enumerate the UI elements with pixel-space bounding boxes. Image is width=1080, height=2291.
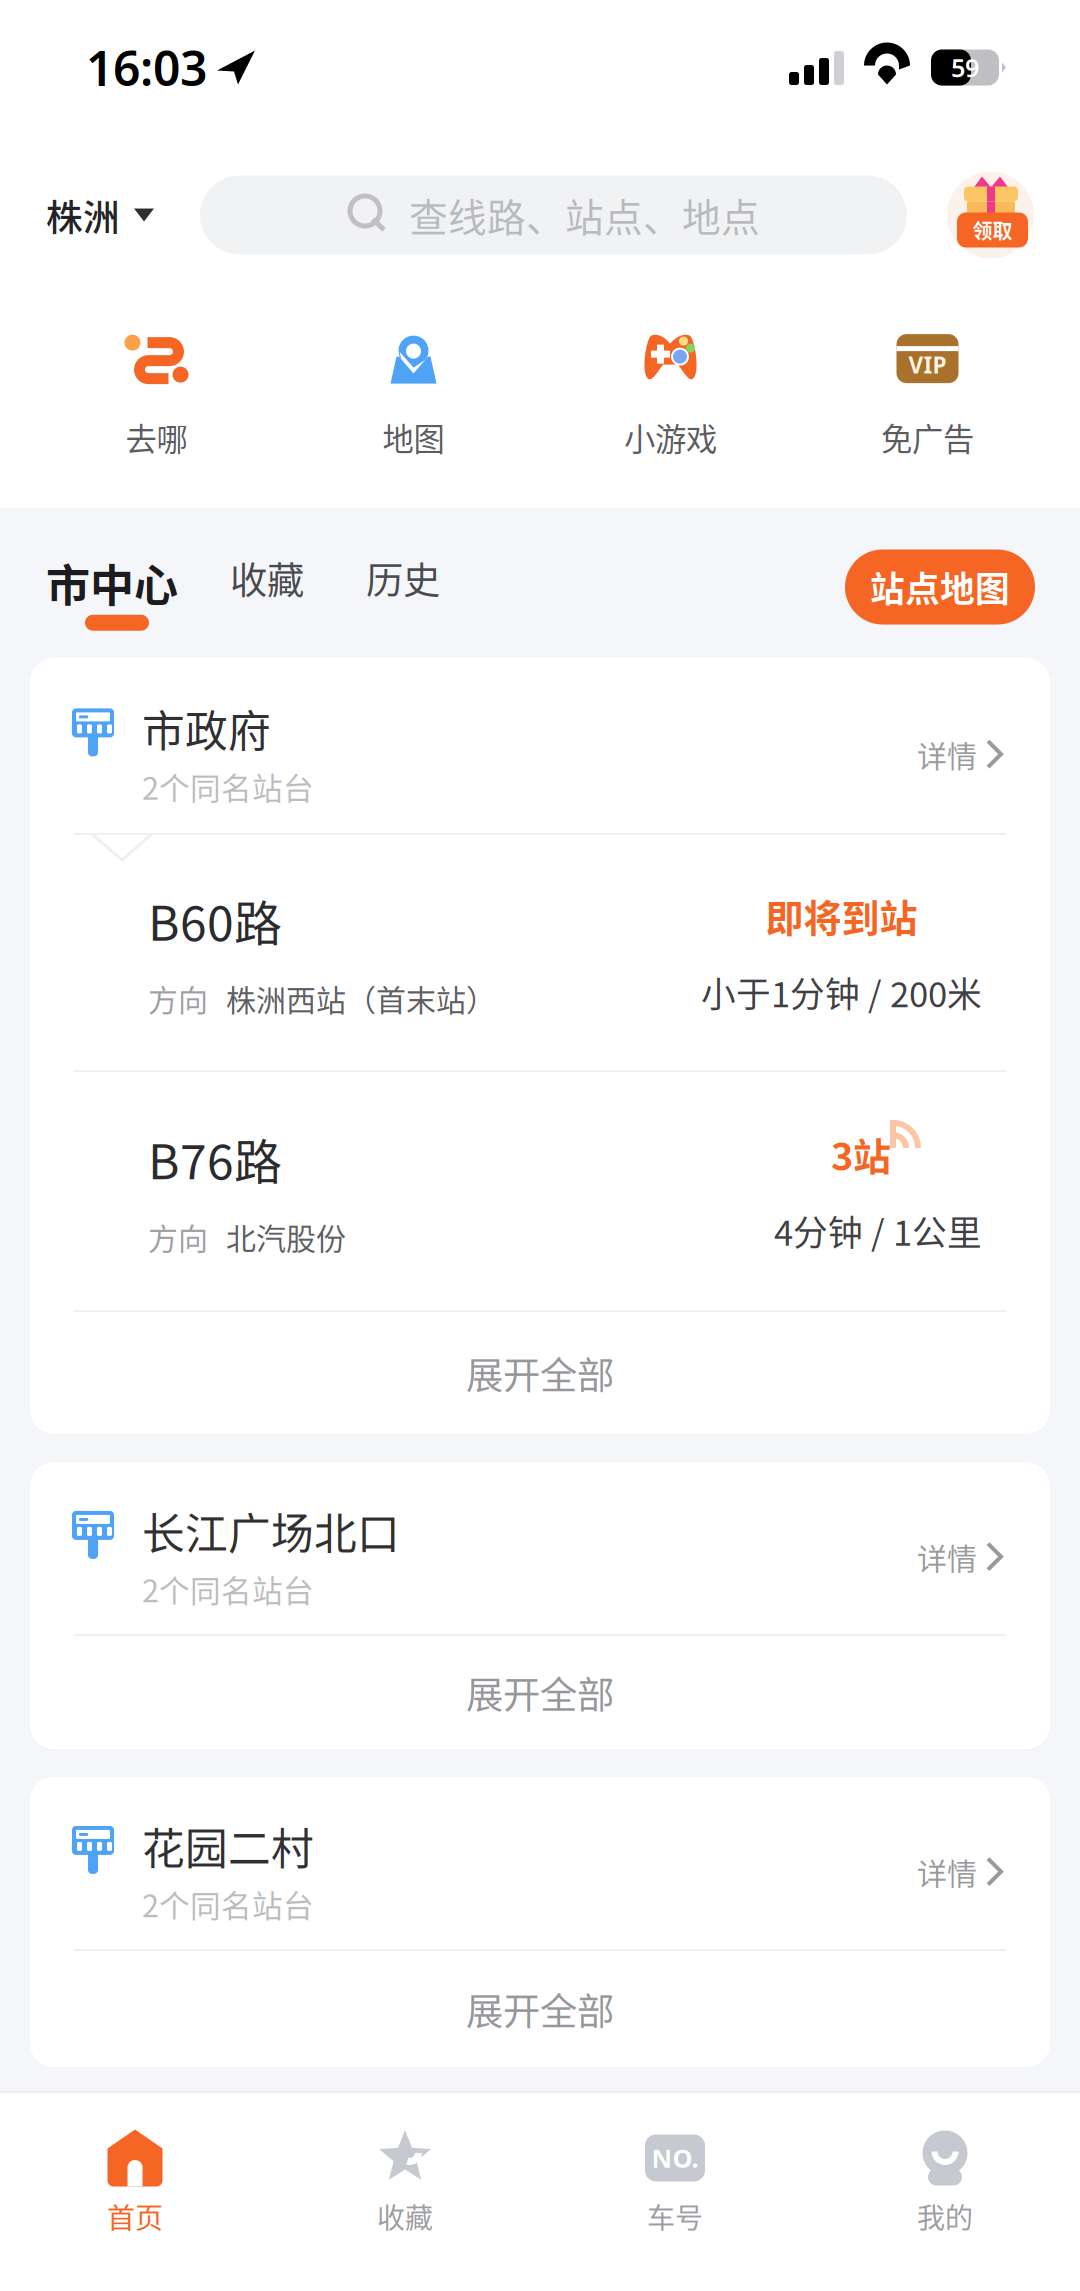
staticText: 详情 (917, 1535, 977, 1578)
button[interactable]: 去哪 (28, 333, 285, 460)
staticText: 市中心 (46, 551, 178, 615)
button[interactable]: 展开全部 (30, 1636, 1050, 1749)
staticText: 株洲 (46, 188, 120, 242)
staticText: 小游戏 (624, 415, 717, 460)
button[interactable]: 小游戏 (542, 333, 799, 460)
staticText: 详情 (917, 1850, 977, 1893)
button[interactable]: 花园二村 (30, 1777, 1050, 1949)
button[interactable]: 展开全部 (30, 1312, 1050, 1434)
staticText: 去哪 (125, 415, 187, 460)
staticText: 收藏 (230, 551, 304, 605)
staticText: 市政府 (142, 697, 271, 759)
staticText: 我的 (917, 2196, 973, 2236)
staticText: 查线路、站点、地点 (409, 187, 760, 243)
staticText: 2个同名站台 (142, 1882, 314, 1926)
button[interactable]: B76路 (30, 1072, 1050, 1310)
staticText: 小于1分钟 / 200米 (701, 967, 982, 1017)
staticText: NO. (651, 2141, 698, 2175)
button[interactable]: 地图 (285, 333, 542, 460)
staticText: 即将到站 (765, 888, 917, 943)
staticText: 展开全部 (466, 1665, 614, 1720)
button[interactable]: 站点地图 (845, 541, 1080, 624)
button[interactable]: VIP (799, 333, 1056, 460)
staticText: 历史 (366, 551, 440, 605)
staticText: 花园二村 (142, 1815, 314, 1877)
staticText: 展开全部 (466, 1982, 614, 2036)
button[interactable]: 领取 (947, 171, 1080, 258)
button[interactable]: 首页 (0, 2093, 270, 2243)
staticText: 免广告 (881, 415, 974, 460)
button[interactable]: 历史 (335, 508, 471, 658)
button[interactable]: 我的 (810, 2093, 1080, 2243)
staticText: 3站 (831, 1126, 891, 1181)
staticText: 展开全部 (466, 1346, 614, 1400)
button[interactable]: 株洲 (0, 175, 200, 255)
staticText: B60路 (148, 885, 282, 954)
button[interactable]: 收藏 (199, 508, 335, 658)
staticText: 地图 (382, 415, 444, 460)
staticText: 2个同名站台 (142, 1567, 314, 1611)
staticText: 4分钟 / 1公里 (774, 1205, 982, 1256)
button[interactable]: NO. (540, 2093, 810, 2243)
button[interactable]: 收藏 (270, 2093, 540, 2243)
staticText: 详情 (917, 732, 977, 776)
staticText: 首页 (107, 2196, 163, 2236)
staticText: 方向 (148, 1215, 208, 1258)
button[interactable]: 长江广场北口 (30, 1462, 1050, 1634)
button[interactable]: 查线路、站点、地点 (200, 175, 907, 254)
staticText: 16:03 (86, 36, 207, 99)
staticText: VIP (908, 350, 946, 380)
button[interactable]: 市政府 (30, 658, 1050, 833)
button[interactable]: 展开全部 (30, 1951, 1050, 2067)
staticText: 方向 (148, 976, 208, 1020)
staticText: 北汽股份 (226, 1215, 346, 1258)
staticText: 59 (951, 51, 979, 84)
button[interactable]: B60路 (30, 835, 1050, 1070)
staticText: 站点地图 (870, 562, 1010, 612)
staticText: B76路 (148, 1123, 282, 1193)
staticText: 株洲西站（首末站） (226, 976, 496, 1020)
staticText: 领取 (972, 215, 1012, 244)
staticText: 2个同名站台 (142, 764, 314, 809)
staticText: 车号 (647, 2196, 703, 2236)
staticText: 长江广场北口 (142, 1500, 400, 1562)
staticText: 收藏 (377, 2196, 433, 2236)
button[interactable]: 市中心 (25, 508, 199, 658)
